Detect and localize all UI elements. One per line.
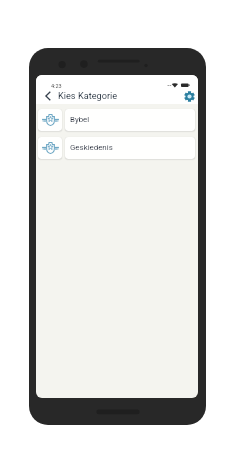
- staticText: Kies Kategorie: [58, 90, 118, 101]
- staticText: 4:23: [51, 83, 62, 89]
- button[interactable]: Back: [40, 88, 55, 103]
- button[interactable]: Bybel: [38, 109, 195, 131]
- button[interactable]: Settings: [182, 89, 197, 104]
- staticText: Geskiedenis: [70, 143, 113, 152]
- button[interactable]: Geskiedenis: [38, 137, 195, 159]
- staticText: Bybel: [70, 115, 90, 124]
